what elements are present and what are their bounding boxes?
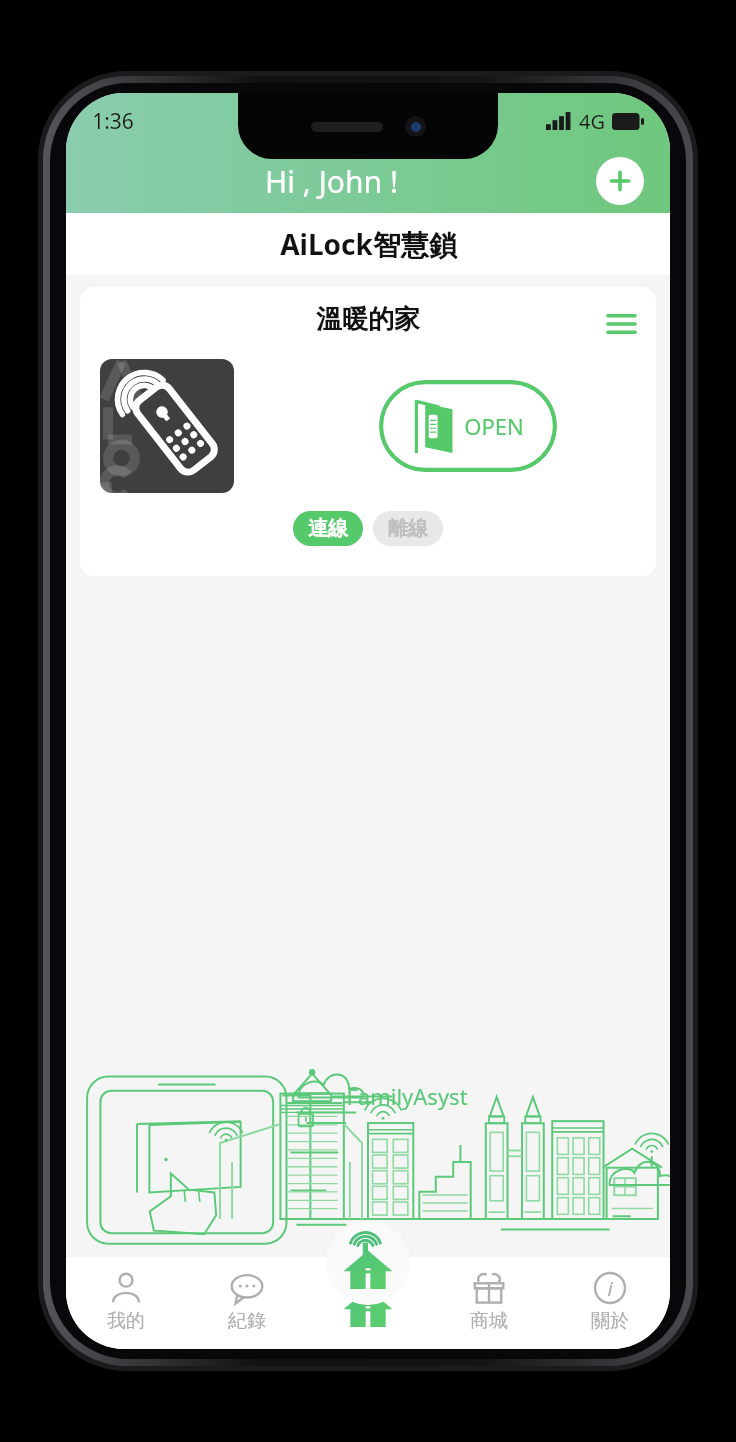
staticText: 關於: [591, 1309, 629, 1333]
button[interactable]: 紀錄: [186, 1257, 307, 1349]
button[interactable]: OPEN: [379, 380, 557, 472]
button[interactable]: Home: [332, 1229, 404, 1301]
staticText: 連線: [308, 516, 348, 541]
button[interactable]: 連線: [293, 511, 363, 546]
button[interactable]: 商城: [428, 1257, 549, 1349]
staticText: FamilyAsyst: [346, 1081, 468, 1111]
button[interactable]: i: [549, 1257, 670, 1349]
staticText: i: [607, 1275, 613, 1302]
staticText: 紀錄: [228, 1309, 266, 1333]
staticText: 商城: [470, 1309, 508, 1333]
button[interactable]: 離線: [373, 511, 443, 546]
staticText: OPEN: [464, 411, 524, 441]
staticText: Hi , John !: [265, 161, 398, 202]
button[interactable]: 溫暖的家: [80, 287, 656, 576]
button[interactable]: 我的: [66, 1257, 186, 1349]
staticText: 離線: [388, 516, 428, 541]
button[interactable]: AiLock device: [100, 359, 234, 493]
button[interactable]: Home: [342, 1257, 394, 1349]
staticText: 溫暖的家: [316, 303, 420, 336]
staticText: 4G: [579, 108, 605, 135]
staticText: 我的: [107, 1309, 145, 1333]
staticText: AiLock智慧鎖: [280, 225, 457, 263]
button[interactable]: Add device: [596, 157, 644, 205]
button[interactable]: Menu: [600, 303, 642, 345]
staticText: 1:36: [92, 107, 134, 136]
